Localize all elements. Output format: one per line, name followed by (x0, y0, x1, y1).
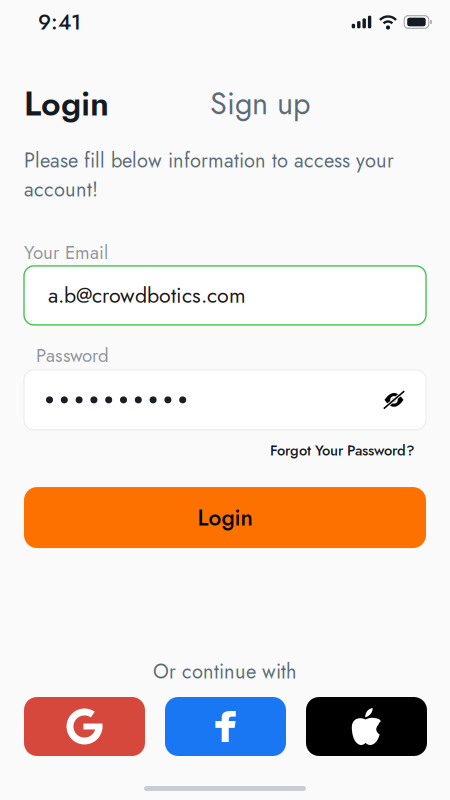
staticText: Password (36, 342, 109, 369)
button[interactable]: Show password (383, 391, 405, 409)
staticText: Please fill below information to access … (24, 146, 394, 204)
staticText: Sign up (210, 81, 310, 126)
staticText: Login (24, 79, 109, 128)
button[interactable]: Forgot Your Password? (270, 440, 415, 461)
button[interactable]: Continue with Google (24, 697, 145, 756)
staticText: Login (197, 501, 252, 534)
staticText: a.b@crowdbotics.com (48, 280, 246, 311)
staticText: Your Email (24, 239, 108, 266)
staticText: Or continue with (153, 657, 297, 686)
button[interactable]: Sign up (210, 81, 310, 126)
button[interactable]: Login (24, 487, 426, 548)
staticText: 9:41 (38, 7, 81, 37)
button[interactable]: Continue with Facebook (165, 697, 286, 756)
button[interactable]: Continue with Apple (306, 697, 427, 756)
staticText: Forgot Your Password? (270, 440, 415, 461)
button[interactable]: Login (24, 79, 109, 128)
